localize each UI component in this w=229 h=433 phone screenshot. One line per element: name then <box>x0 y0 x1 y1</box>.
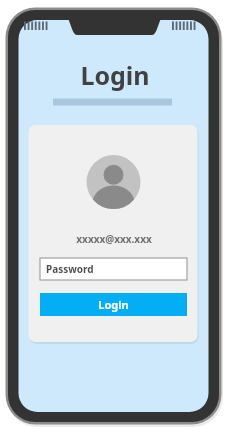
button[interactable]: Password <box>40 258 187 280</box>
staticText: Login <box>80 58 150 92</box>
staticText: xxxxx@xxx.xxx <box>76 232 152 246</box>
button[interactable]: Login <box>40 293 187 316</box>
button[interactable]: Profile picture <box>87 155 141 209</box>
staticText: Login <box>98 297 129 312</box>
staticText: Password <box>46 262 94 276</box>
